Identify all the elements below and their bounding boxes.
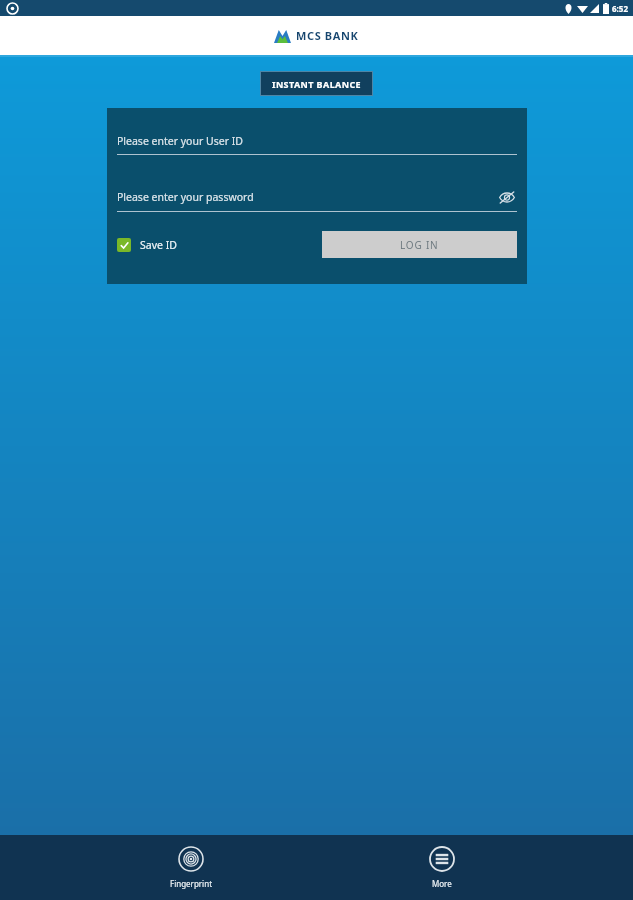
button[interactable]: INSTANT BALANCE	[260, 71, 373, 96]
staticText: More	[432, 878, 452, 889]
button[interactable]: LOG IN	[322, 231, 517, 258]
staticText: LOG IN	[400, 238, 439, 252]
staticText: 6:52	[612, 3, 628, 14]
staticText: Save ID	[140, 238, 177, 252]
staticText: INSTANT BALANCE	[272, 78, 362, 90]
staticText: MCS BANK	[296, 28, 359, 43]
staticText: Please enter your password	[117, 190, 497, 204]
button[interactable]: Please enter your password	[117, 187, 517, 212]
button[interactable]: Show password	[497, 187, 517, 207]
button[interactable]: Save ID	[117, 238, 177, 252]
button[interactable]: Please enter your User ID	[117, 134, 517, 155]
button[interactable]: Fingerprint	[131, 842, 251, 893]
button[interactable]: More	[382, 842, 502, 893]
staticText: Please enter your User ID	[117, 134, 243, 148]
staticText: Fingerprint	[170, 878, 213, 889]
